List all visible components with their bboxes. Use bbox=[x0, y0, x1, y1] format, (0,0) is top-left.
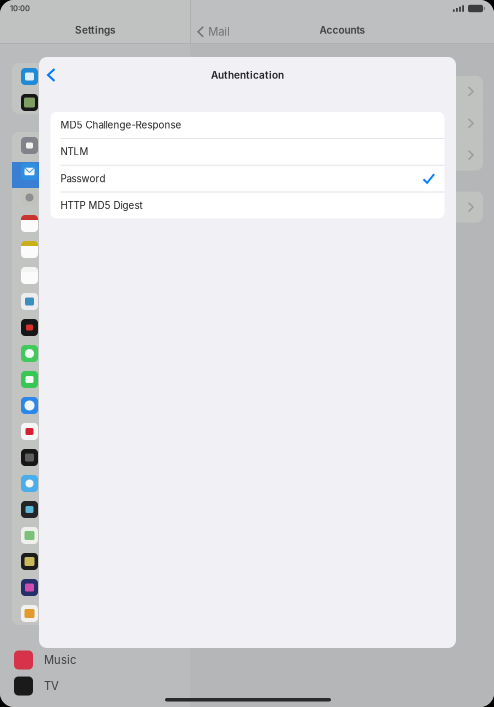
staticText: HTTP MD5 Digest bbox=[60, 199, 142, 211]
staticText: MD5 Challenge-Response bbox=[60, 119, 181, 131]
staticText: Settings bbox=[75, 24, 115, 36]
button[interactable]: MD5 Challenge-Response bbox=[50, 112, 444, 139]
staticText: Password bbox=[60, 173, 105, 184]
button[interactable]: Mail bbox=[194, 21, 234, 43]
staticText: Authentication bbox=[211, 69, 284, 81]
button[interactable]: TV bbox=[14, 673, 176, 699]
staticText: NTLM bbox=[60, 146, 88, 158]
button[interactable]: Password bbox=[50, 166, 444, 192]
staticText: 10:00 bbox=[10, 4, 30, 13]
staticText: Music bbox=[44, 653, 76, 667]
staticText: Mail bbox=[208, 25, 230, 39]
staticText: TV bbox=[44, 679, 59, 693]
button[interactable]: Music bbox=[14, 647, 176, 673]
button[interactable]: Back bbox=[42, 63, 60, 87]
button[interactable]: HTTP MD5 Digest bbox=[50, 192, 444, 218]
staticText: Accounts bbox=[319, 24, 364, 36]
button[interactable]: NTLM bbox=[50, 139, 444, 166]
